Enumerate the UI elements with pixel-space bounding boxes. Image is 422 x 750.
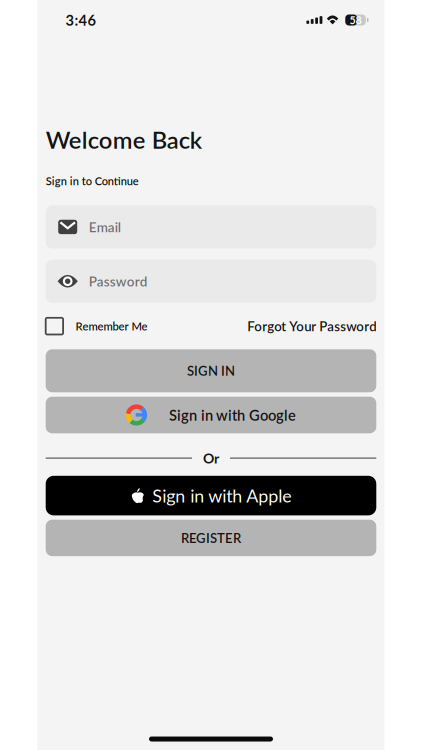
staticText: 58 — [350, 14, 362, 26]
staticText: Email — [89, 219, 121, 235]
staticText: Forgot Your Password — [247, 318, 376, 334]
button[interactable]: REGISTER — [46, 520, 376, 556]
button[interactable]: SIGN IN — [46, 349, 376, 392]
staticText: 3:46 — [65, 11, 96, 29]
staticText: Sign in with Apple — [152, 485, 291, 506]
staticText: Sign in to Continue — [46, 174, 139, 188]
staticText: Remember Me — [75, 319, 147, 333]
staticText: REGISTER — [181, 530, 241, 546]
staticText: SIGN IN — [187, 363, 235, 379]
staticText: Or — [203, 450, 219, 466]
staticText: Password — [89, 273, 148, 289]
button[interactable]: Sign in with Apple — [46, 476, 376, 515]
button[interactable]: Remember Me — [46, 318, 147, 334]
staticText: Welcome Back — [46, 125, 202, 154]
button[interactable]: Forgot Your Password — [247, 318, 376, 334]
staticText: Sign in with Google — [169, 406, 296, 424]
button[interactable]: Sign in with Google — [46, 397, 376, 433]
